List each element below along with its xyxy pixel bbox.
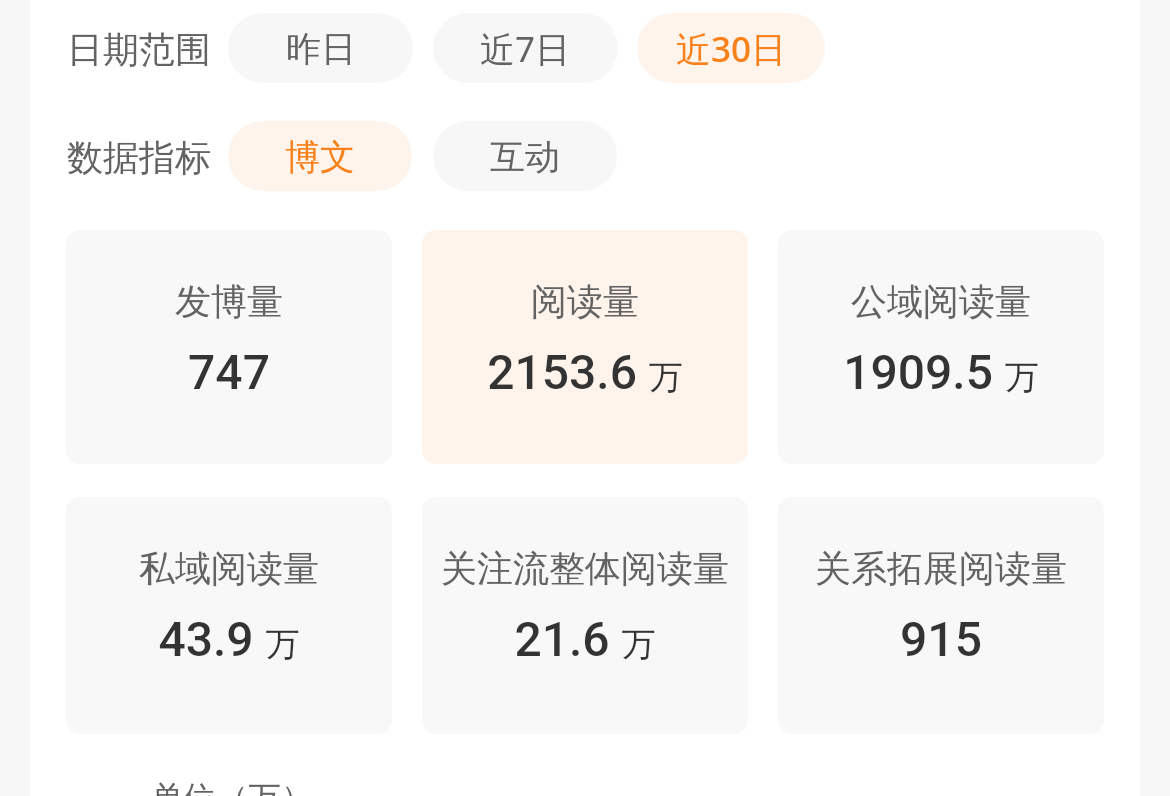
button[interactable]: 公域阅读量 1909.5万 — [778, 230, 1104, 464]
staticText: 数据指标 — [67, 135, 211, 180]
staticText: 单位（万） — [151, 778, 314, 796]
staticText: 2153.6 万 — [487, 344, 683, 400]
staticText: 747 — [188, 344, 270, 400]
staticText: 阅读量 — [531, 279, 639, 324]
button[interactable]: 关系拓展阅读量 915 — [778, 497, 1104, 734]
button[interactable]: 近7日 — [433, 13, 618, 83]
staticText: 互动 — [490, 135, 560, 179]
staticText: 近30日 — [676, 25, 787, 73]
staticText: 公域阅读量 — [851, 279, 1031, 324]
button[interactable]: 昨日 — [228, 13, 413, 83]
button[interactable]: 私域阅读量 43.9万 — [66, 497, 392, 734]
staticText: 发博量 — [175, 279, 283, 324]
staticText: 昨日 — [286, 27, 356, 71]
button[interactable]: 关注流整体阅读量 21.6万 — [422, 497, 748, 734]
staticText: 近7日 — [480, 25, 571, 73]
button[interactable]: 互动 — [433, 121, 617, 191]
staticText: 私域阅读量 — [139, 546, 319, 591]
staticText: 21.6 万 — [514, 611, 656, 667]
staticText: 43.9 万 — [158, 611, 300, 667]
staticText: 关系拓展阅读量 — [815, 546, 1067, 591]
button[interactable]: 近30日 — [637, 13, 825, 83]
staticText: 博文 — [285, 135, 355, 179]
button[interactable]: 发博量 747 — [66, 230, 392, 464]
staticText: 关注流整体阅读量 — [441, 546, 729, 591]
staticText: 915 — [900, 611, 982, 667]
button[interactable]: 阅读量 2153.6万 — [422, 230, 748, 464]
staticText: 日期范围 — [67, 27, 211, 72]
staticText: 1909.5 万 — [843, 344, 1039, 400]
button[interactable]: 博文 — [228, 121, 412, 191]
